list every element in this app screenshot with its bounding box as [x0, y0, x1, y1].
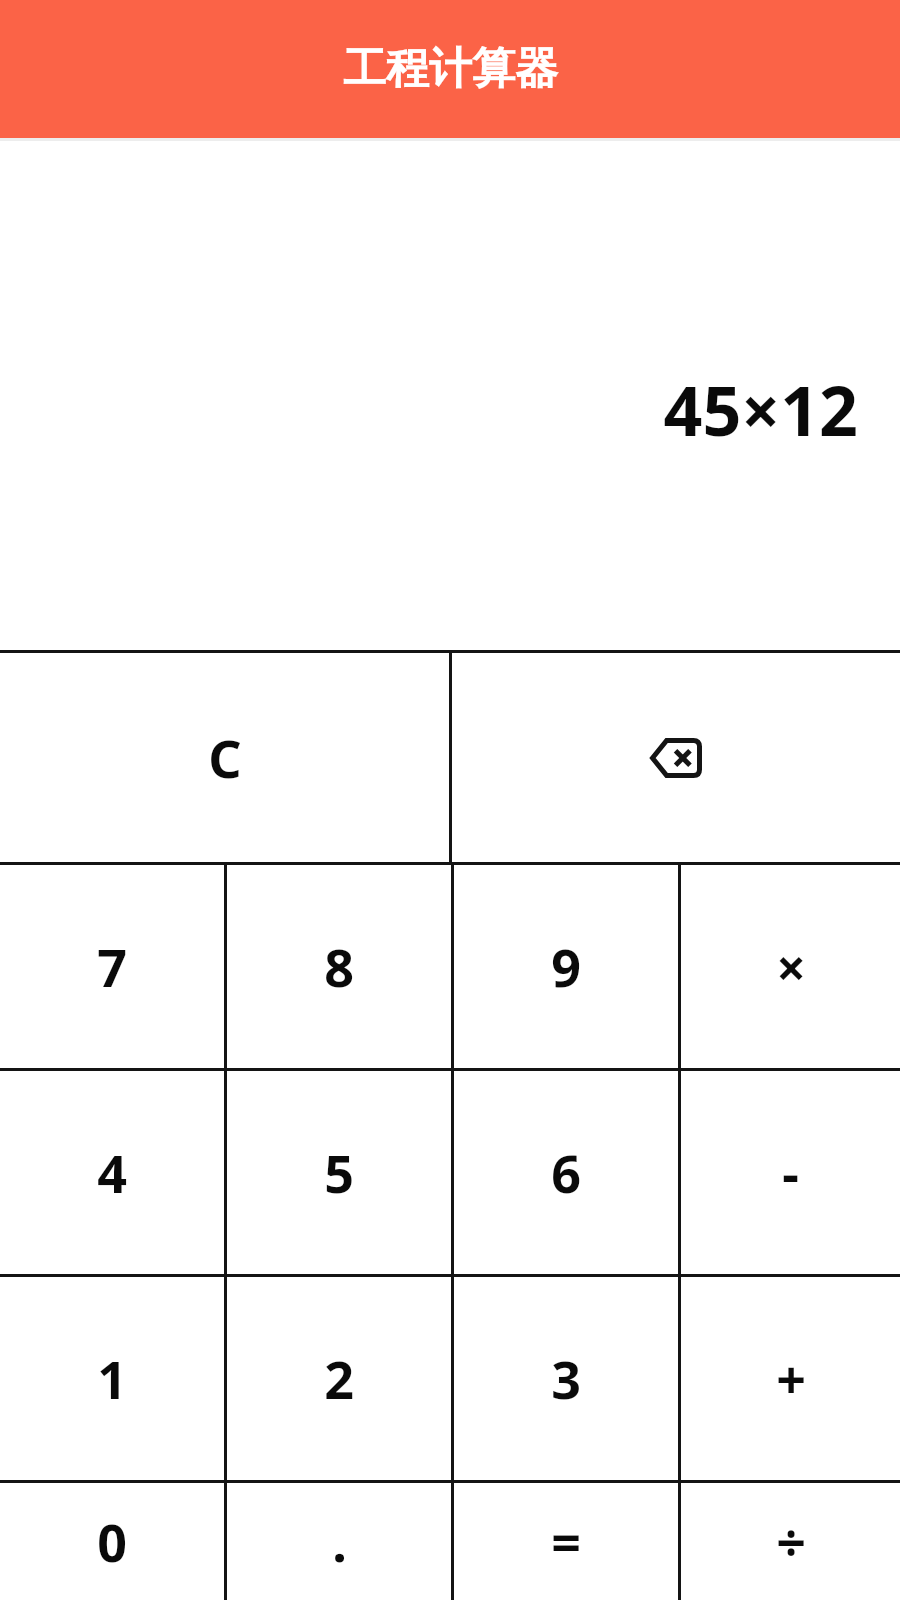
staticText: . — [332, 1506, 347, 1577]
button[interactable]: ÷ — [681, 1483, 900, 1600]
staticText: 5 — [324, 1137, 354, 1208]
button[interactable]: 3 — [454, 1277, 678, 1480]
button[interactable]: Backspace — [452, 653, 900, 862]
staticText: 1 — [97, 1343, 127, 1414]
staticText: - — [782, 1137, 799, 1208]
staticText: 8 — [324, 931, 354, 1002]
staticText: × — [776, 931, 806, 1002]
button[interactable]: . — [227, 1483, 451, 1600]
staticText: 9 — [551, 931, 581, 1002]
staticText: 2 — [324, 1343, 354, 1414]
staticText: = — [551, 1506, 581, 1577]
staticText: 45×12 — [663, 363, 858, 456]
button[interactable]: 7 — [0, 865, 224, 1068]
staticText: 6 — [551, 1137, 581, 1208]
button[interactable]: + — [681, 1277, 900, 1480]
button[interactable]: - — [681, 1071, 900, 1274]
staticText: 7 — [97, 931, 127, 1002]
staticText: ÷ — [776, 1506, 806, 1577]
button[interactable]: 4 — [0, 1071, 224, 1274]
button[interactable]: 2 — [227, 1277, 451, 1480]
staticText: 3 — [551, 1343, 581, 1414]
button[interactable]: 5 — [227, 1071, 451, 1274]
button[interactable]: = — [454, 1483, 678, 1600]
staticText: 0 — [97, 1506, 127, 1577]
button[interactable]: × — [681, 865, 900, 1068]
button[interactable]: 8 — [227, 865, 451, 1068]
staticText: 工程计算器 — [343, 42, 558, 96]
staticText: + — [776, 1343, 806, 1414]
button[interactable]: 9 — [454, 865, 678, 1068]
button[interactable]: 0 — [0, 1483, 224, 1600]
staticText: 4 — [97, 1137, 127, 1208]
button[interactable]: 6 — [454, 1071, 678, 1274]
button[interactable]: C — [0, 653, 449, 862]
staticText: C — [208, 722, 242, 793]
button[interactable]: 1 — [0, 1277, 224, 1480]
